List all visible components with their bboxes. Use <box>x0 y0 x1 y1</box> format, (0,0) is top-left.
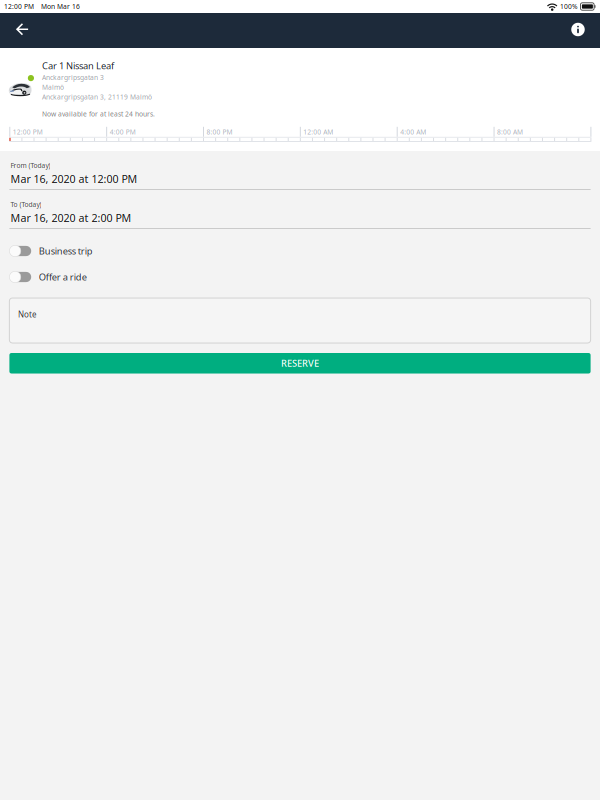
staticText: Car 1 Nissan Leaf <box>42 59 114 72</box>
staticText: 12:00 PM <box>13 127 43 136</box>
staticText: 12:00 AM <box>303 127 333 136</box>
button[interactable]: Information <box>560 13 596 48</box>
staticText: From (Today) <box>10 161 50 170</box>
button[interactable]: Offer a ride <box>9 264 591 290</box>
staticText: To (Today) <box>10 200 41 209</box>
staticText: 8:00 AM <box>497 127 523 136</box>
staticText: 12:00 PM <box>4 2 34 11</box>
staticText: RESERVE <box>281 357 319 369</box>
button[interactable]: Business trip <box>9 238 591 264</box>
staticText: Offer a ride <box>39 271 87 283</box>
button[interactable]: From (Today) <box>9 151 591 190</box>
staticText: Business trip <box>39 245 93 257</box>
staticText: 100% <box>560 2 578 11</box>
staticText: 4:00 AM <box>400 127 426 136</box>
staticText: Malmö <box>42 83 64 92</box>
staticText: Note <box>18 309 37 320</box>
staticText: 8:00 PM <box>206 127 232 136</box>
staticText: Mar 16, 2020 at 12:00 PM <box>10 172 137 186</box>
button[interactable]: To (Today) <box>9 190 591 229</box>
staticText: Mar 16, 2020 at 2:00 PM <box>10 211 131 225</box>
staticText: 4:00 PM <box>110 127 136 136</box>
button[interactable]: RESERVE <box>9 353 591 373</box>
staticText: Anckargripsgatan 3, 21119 Malmö <box>42 93 152 101</box>
staticText: Anckargripsgatan 3 <box>42 73 104 82</box>
staticText: Now available for at least 24 hours. <box>42 109 155 118</box>
staticText: Mon Mar 16 <box>41 2 80 11</box>
button[interactable]: Back <box>4 13 40 48</box>
